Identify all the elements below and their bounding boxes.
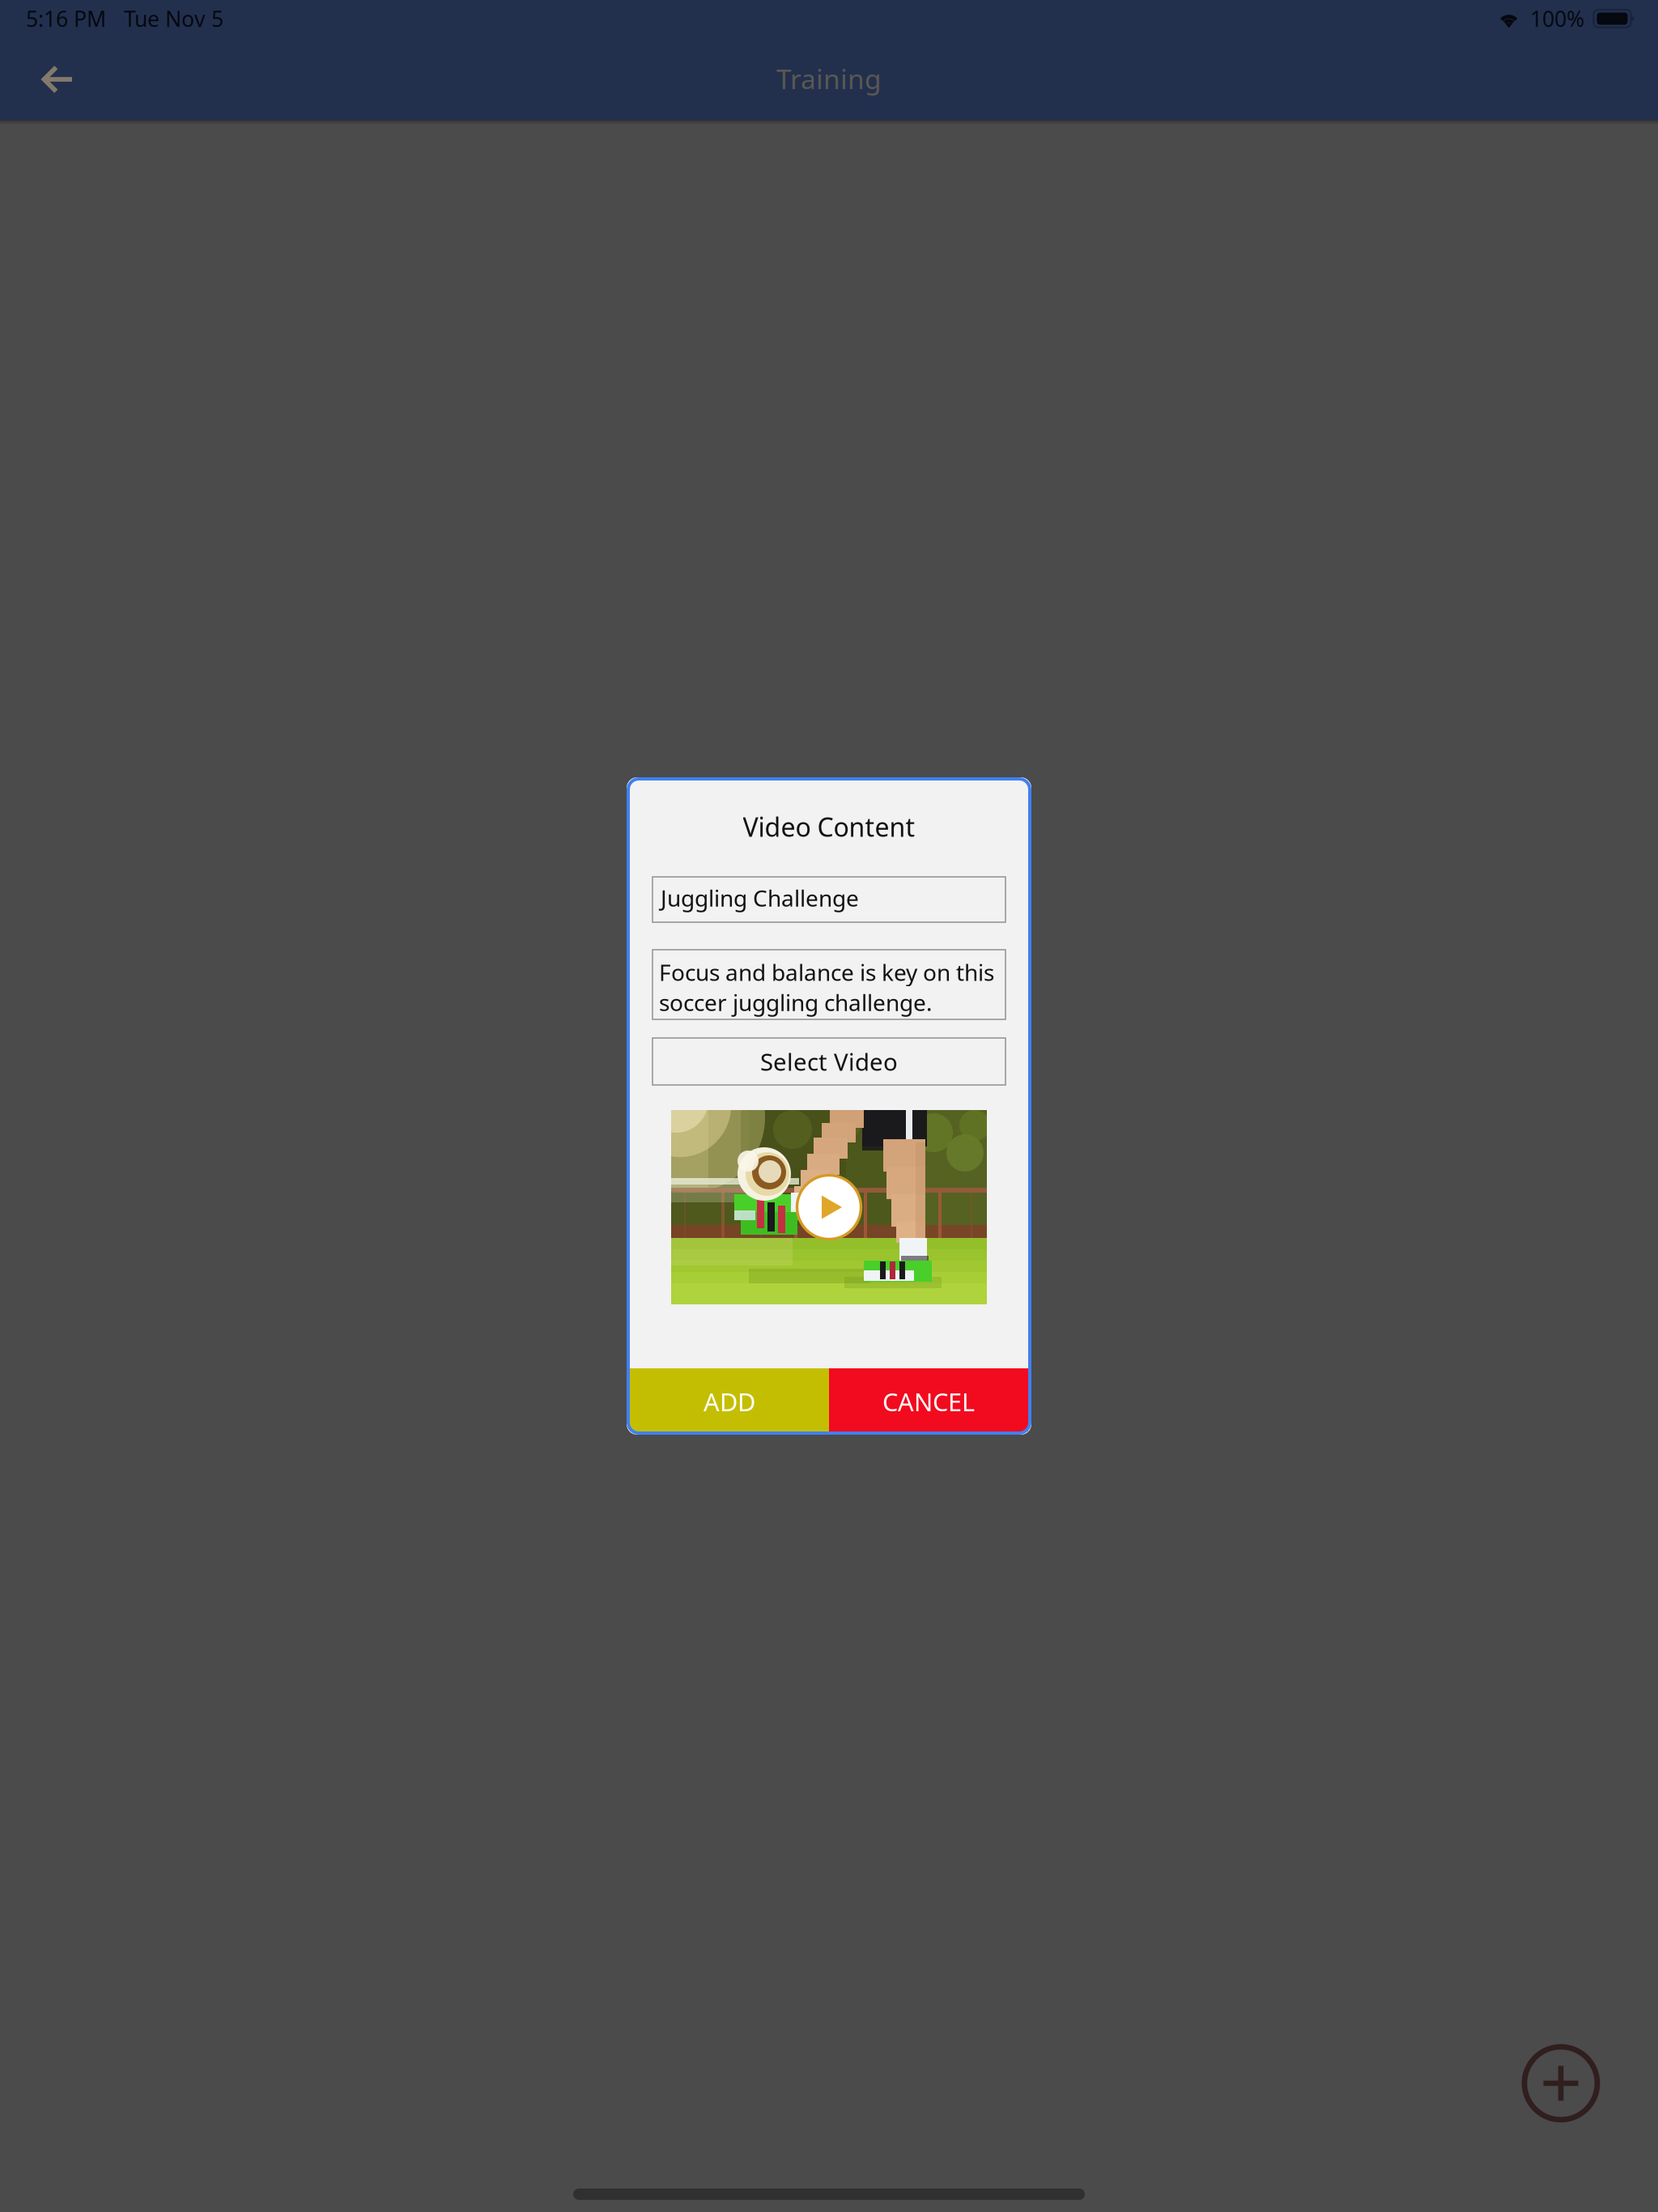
staticText: 5:16 PM: [26, 4, 106, 33]
button[interactable]: CANCEL: [829, 1368, 1028, 1431]
button[interactable]: Play video: [671, 1110, 987, 1304]
button[interactable]: ADD: [630, 1368, 829, 1431]
button[interactable]: Back: [26, 49, 87, 110]
staticText: 100%: [1530, 4, 1584, 33]
staticText: Select Video: [760, 1046, 898, 1077]
button[interactable]: Focus and balance is key on this soccer …: [653, 950, 1005, 1019]
staticText: Focus and balance is key on this soccer …: [659, 957, 994, 1017]
staticText: Training: [776, 61, 882, 97]
button[interactable]: Select Video: [653, 1038, 1005, 1085]
button[interactable]: Add: [1507, 2030, 1614, 2137]
staticText: ADD: [704, 1385, 755, 1418]
button[interactable]: Juggling Challenge: [653, 877, 1005, 922]
staticText: Tue Nov 5: [124, 4, 223, 33]
staticText: CANCEL: [882, 1385, 975, 1418]
staticText: Video Content: [743, 810, 915, 844]
staticText: Juggling Challenge: [661, 883, 859, 913]
